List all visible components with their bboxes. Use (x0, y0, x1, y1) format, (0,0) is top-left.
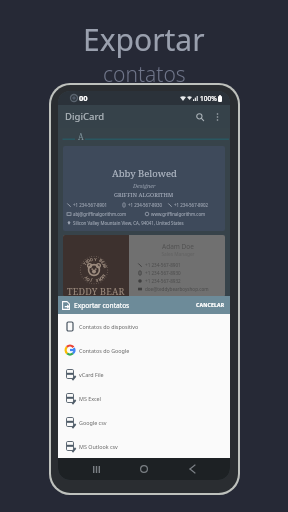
staticText: Designer (133, 182, 156, 189)
staticText: O (85, 275, 91, 283)
staticText: abj@griffinalgorithm.com (73, 211, 127, 217)
staticText: +1 234-567-8901 (145, 262, 181, 268)
staticText: M (99, 273, 107, 279)
button[interactable]: Home (134, 459, 154, 479)
staticText: +1 234-567-8901 (73, 202, 108, 208)
button[interactable]: T (63, 235, 225, 297)
button[interactable]: More options (209, 109, 225, 125)
button[interactable]: Contatos do dispositivo (58, 314, 230, 338)
staticText: DigiCard (65, 110, 105, 123)
staticText: E (99, 260, 106, 266)
staticText: J (89, 277, 93, 283)
staticText: Contatos do dispositivo (79, 323, 139, 330)
staticText: doe@teddybearboyshop.com (145, 286, 209, 292)
button[interactable]: Abby Belowed (63, 146, 225, 231)
staticText: Contatos do Google (79, 347, 130, 354)
staticText: Abby Belowed (112, 167, 177, 180)
button[interactable]: MS Outlook csv (58, 434, 230, 458)
staticText: Exportar (83, 19, 205, 60)
staticText: Y (94, 257, 97, 263)
button[interactable]: Back (182, 459, 202, 479)
button[interactable]: CANCELAR (192, 300, 226, 311)
staticText: O (97, 274, 104, 282)
button[interactable]: vCard File (58, 362, 230, 386)
staticText: R (101, 265, 108, 269)
staticText: +1 234-567-8932 (145, 278, 181, 284)
staticText: D (89, 257, 94, 263)
staticText: D (86, 257, 92, 264)
staticText: E (84, 259, 91, 265)
staticText: CANCELAR (196, 302, 225, 309)
staticText: 100% (200, 94, 217, 103)
staticText: Adam Doe (131, 242, 225, 251)
button[interactable]: MS Excel (58, 386, 230, 410)
staticText: +1 234-567-8902 (174, 202, 209, 208)
staticText: T (82, 261, 89, 267)
staticText: E (94, 277, 98, 283)
button[interactable]: Search (191, 108, 209, 126)
staticText: TEDDY BEAR (67, 285, 125, 297)
button[interactable]: Google csv (58, 410, 230, 434)
staticText: Google csv (79, 419, 107, 426)
staticText: R (97, 276, 102, 282)
staticText: vCard File (79, 371, 104, 378)
staticText: 00 (79, 93, 88, 103)
staticText: A (78, 131, 84, 142)
button[interactable]: Recents (86, 459, 106, 479)
staticText: +1 234-567-8930 (128, 202, 163, 208)
staticText: MS Excel (79, 395, 102, 402)
staticText: www.griffinalgorithm.com (151, 211, 206, 217)
staticText: GRIFFIN ALGORITHM (114, 191, 174, 198)
button[interactable]: Contatos do Google (58, 338, 230, 362)
staticText: contatos (103, 60, 186, 89)
staticText: +1 234-567-8930 (145, 270, 181, 276)
staticText: MS Outlook csv (79, 443, 118, 450)
staticText: Y (83, 274, 90, 280)
staticText: Exportar contatos (74, 301, 130, 310)
staticText: B (98, 258, 103, 264)
staticText: A (100, 262, 107, 268)
staticText: Silicon Valley Mountain View, CA, 94041,… (73, 220, 184, 226)
